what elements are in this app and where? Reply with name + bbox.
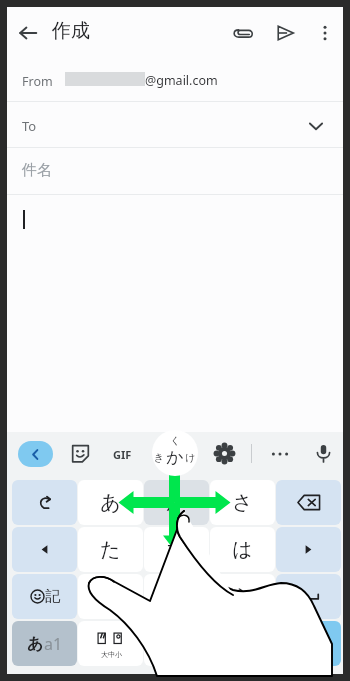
staticText: か bbox=[166, 447, 184, 468]
staticText: 作成 bbox=[52, 19, 90, 43]
staticText: 大中小 bbox=[101, 650, 122, 659]
button[interactable]: Stickers bbox=[69, 442, 92, 465]
staticText: a1 bbox=[44, 633, 63, 655]
staticText: き bbox=[154, 451, 165, 464]
button[interactable]: わ bbox=[144, 621, 209, 666]
button[interactable]: た bbox=[78, 527, 143, 572]
button[interactable]: な bbox=[144, 527, 209, 572]
staticText: く bbox=[170, 434, 181, 447]
staticText: ま bbox=[100, 584, 121, 609]
button[interactable]: From bbox=[7, 59, 343, 101]
button[interactable]: Back bbox=[15, 20, 41, 46]
button[interactable]: Flick preview か bbox=[152, 430, 198, 476]
button[interactable]: Back bbox=[18, 441, 53, 467]
button[interactable]: Undo bbox=[12, 480, 77, 525]
button[interactable]: あ bbox=[78, 480, 143, 525]
staticText: け bbox=[185, 451, 196, 464]
staticText: From bbox=[22, 73, 53, 90]
staticText: あ bbox=[100, 490, 121, 515]
button[interactable]: や bbox=[144, 574, 209, 619]
staticText: な bbox=[166, 537, 187, 562]
staticText: To bbox=[22, 117, 37, 135]
button[interactable]: ま bbox=[78, 574, 143, 619]
button[interactable]: Cursor right bbox=[276, 527, 341, 572]
staticText: ら bbox=[232, 584, 253, 609]
button[interactable]: 記 bbox=[12, 574, 77, 619]
button[interactable]: は bbox=[210, 527, 275, 572]
staticText: か bbox=[166, 490, 187, 515]
staticText: 記 bbox=[45, 587, 60, 606]
button[interactable]: ら bbox=[210, 574, 275, 619]
button[interactable]: Cursor left bbox=[12, 527, 77, 572]
button[interactable]: 件名 bbox=[7, 147, 343, 194]
button[interactable]: Diacritic marks bbox=[78, 621, 143, 666]
staticText: 件名 bbox=[22, 161, 52, 180]
button[interactable]: Send bbox=[272, 20, 298, 46]
button[interactable]: Delete bbox=[276, 480, 341, 525]
button[interactable]: Settings bbox=[214, 443, 235, 464]
button[interactable]: あ bbox=[12, 621, 77, 666]
button[interactable]: Space bbox=[276, 574, 341, 619]
button[interactable]: More bbox=[265, 445, 295, 463]
button[interactable]: Attach file bbox=[230, 20, 256, 46]
staticText: @gmail.com bbox=[145, 72, 218, 89]
staticText: あ bbox=[27, 634, 44, 654]
button[interactable]: さ bbox=[210, 480, 275, 525]
button[interactable]: か bbox=[144, 480, 209, 525]
button[interactable]: GIF bbox=[107, 445, 137, 463]
button[interactable]: Enter bbox=[276, 621, 341, 666]
button[interactable]: Voice input bbox=[313, 442, 334, 463]
button[interactable]: More options bbox=[312, 20, 338, 46]
staticText: は bbox=[232, 537, 253, 562]
staticText: た bbox=[100, 537, 121, 562]
staticText: GIF bbox=[113, 447, 132, 462]
staticText: さ bbox=[232, 490, 253, 515]
button[interactable]: To bbox=[7, 102, 343, 147]
